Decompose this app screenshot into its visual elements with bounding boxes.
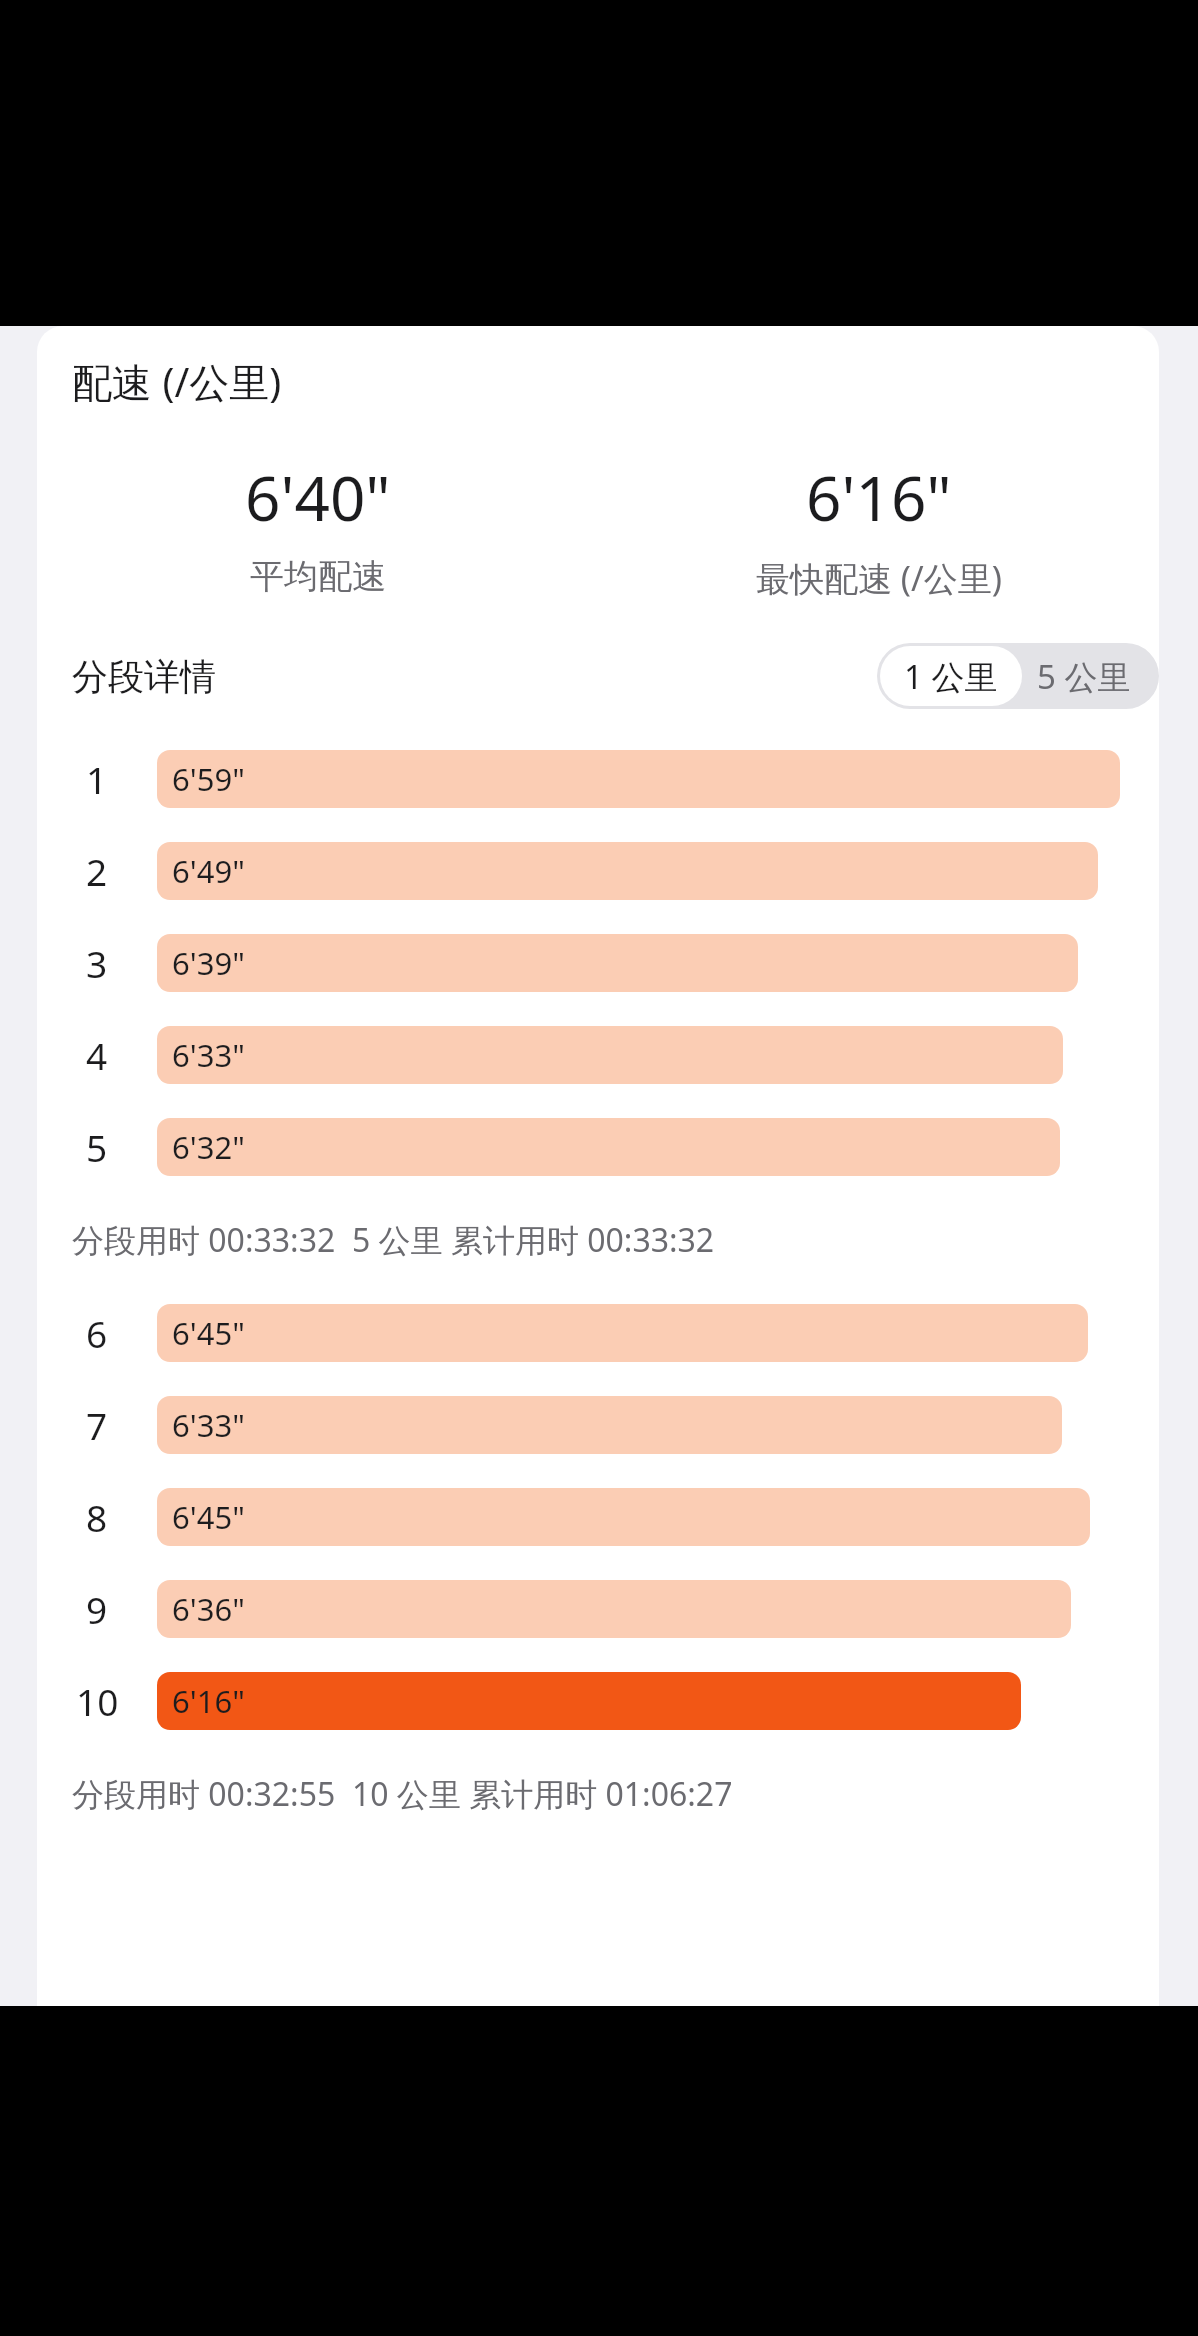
- button[interactable]: 1: [37, 733, 1159, 825]
- staticText: 6'59": [172, 758, 245, 800]
- staticText: 4: [86, 1030, 108, 1080]
- staticText: 6'40": [245, 455, 391, 539]
- staticText: 分段用时 00:32:55 10 公里 累计用时 01:06:27: [72, 1772, 1159, 1816]
- button[interactable]: 5 公里: [1025, 643, 1159, 709]
- button[interactable]: 3: [37, 917, 1159, 1009]
- button[interactable]: 6: [37, 1287, 1159, 1379]
- button[interactable]: 5: [37, 1101, 1159, 1193]
- staticText: 6'16": [806, 455, 952, 539]
- staticText: 1: [86, 754, 108, 804]
- button[interactable]: 10: [37, 1655, 1159, 1747]
- staticText: 6'32": [172, 1126, 245, 1168]
- staticText: 6'45": [172, 1312, 245, 1354]
- button[interactable]: 9: [37, 1563, 1159, 1655]
- staticText: 6'33": [172, 1404, 245, 1446]
- staticText: 10: [76, 1676, 119, 1726]
- staticText: 7: [86, 1400, 108, 1450]
- staticText: 6'49": [172, 850, 245, 892]
- button[interactable]: 4: [37, 1009, 1159, 1101]
- staticText: 分段用时 00:33:32 5 公里 累计用时 00:33:32: [72, 1218, 1159, 1262]
- button[interactable]: 7: [37, 1379, 1159, 1471]
- staticText: 平均配速: [250, 555, 386, 598]
- button[interactable]: 8: [37, 1471, 1159, 1563]
- staticText: 6'33": [172, 1034, 245, 1076]
- staticText: 3: [86, 938, 108, 988]
- staticText: 9: [86, 1584, 108, 1634]
- staticText: 6'39": [172, 942, 245, 984]
- staticText: 2: [86, 846, 108, 896]
- staticText: 分段详情: [72, 654, 216, 699]
- button[interactable]: 1 公里: [880, 646, 1022, 706]
- staticText: 1 公里: [904, 654, 998, 699]
- staticText: 6'36": [172, 1588, 245, 1630]
- staticText: 6'45": [172, 1496, 245, 1538]
- button[interactable]: 2: [37, 825, 1159, 917]
- staticText: 5: [86, 1122, 108, 1172]
- staticText: 最快配速 (/公里): [756, 555, 1002, 601]
- staticText: 5 公里: [1037, 654, 1131, 699]
- staticText: 6: [86, 1308, 108, 1358]
- staticText: 配速 (/公里): [72, 354, 282, 409]
- staticText: 6'16": [172, 1680, 245, 1722]
- staticText: 8: [86, 1492, 108, 1542]
